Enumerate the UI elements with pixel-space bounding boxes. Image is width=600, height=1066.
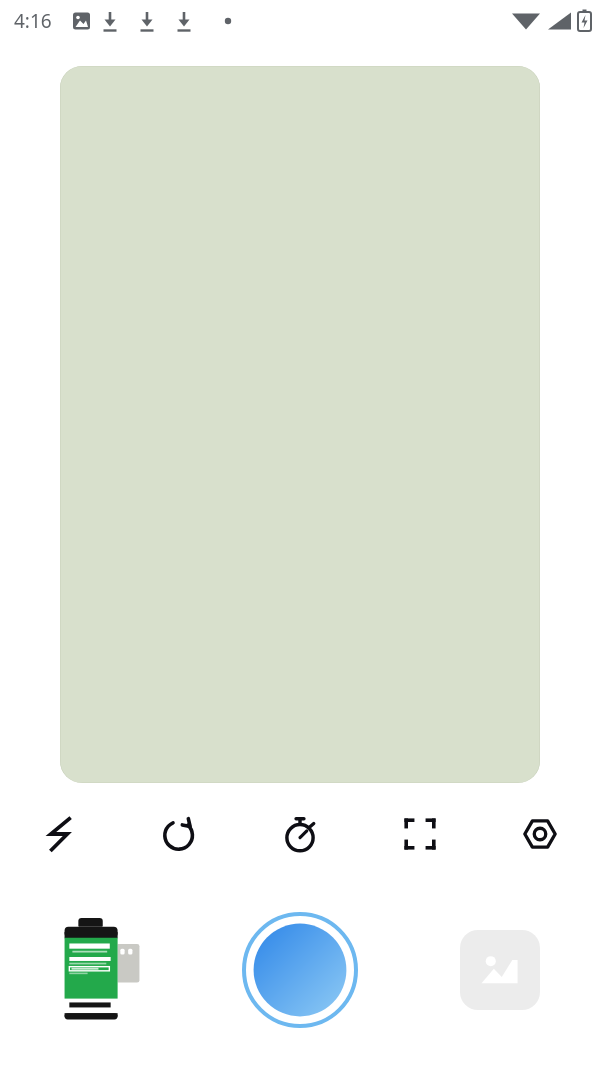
button[interactable]: Settings (480, 783, 600, 885)
button[interactable]: Gallery (460, 930, 540, 1010)
button[interactable]: Timer (240, 783, 360, 885)
button[interactable]: Select film stock (63, 918, 141, 1022)
staticText: 4:16 (14, 8, 52, 34)
button[interactable]: Shutter (241, 911, 359, 1029)
button[interactable]: Flash (0, 783, 120, 885)
button[interactable]: Switch camera (120, 783, 240, 885)
button[interactable]: Aspect ratio (360, 783, 480, 885)
